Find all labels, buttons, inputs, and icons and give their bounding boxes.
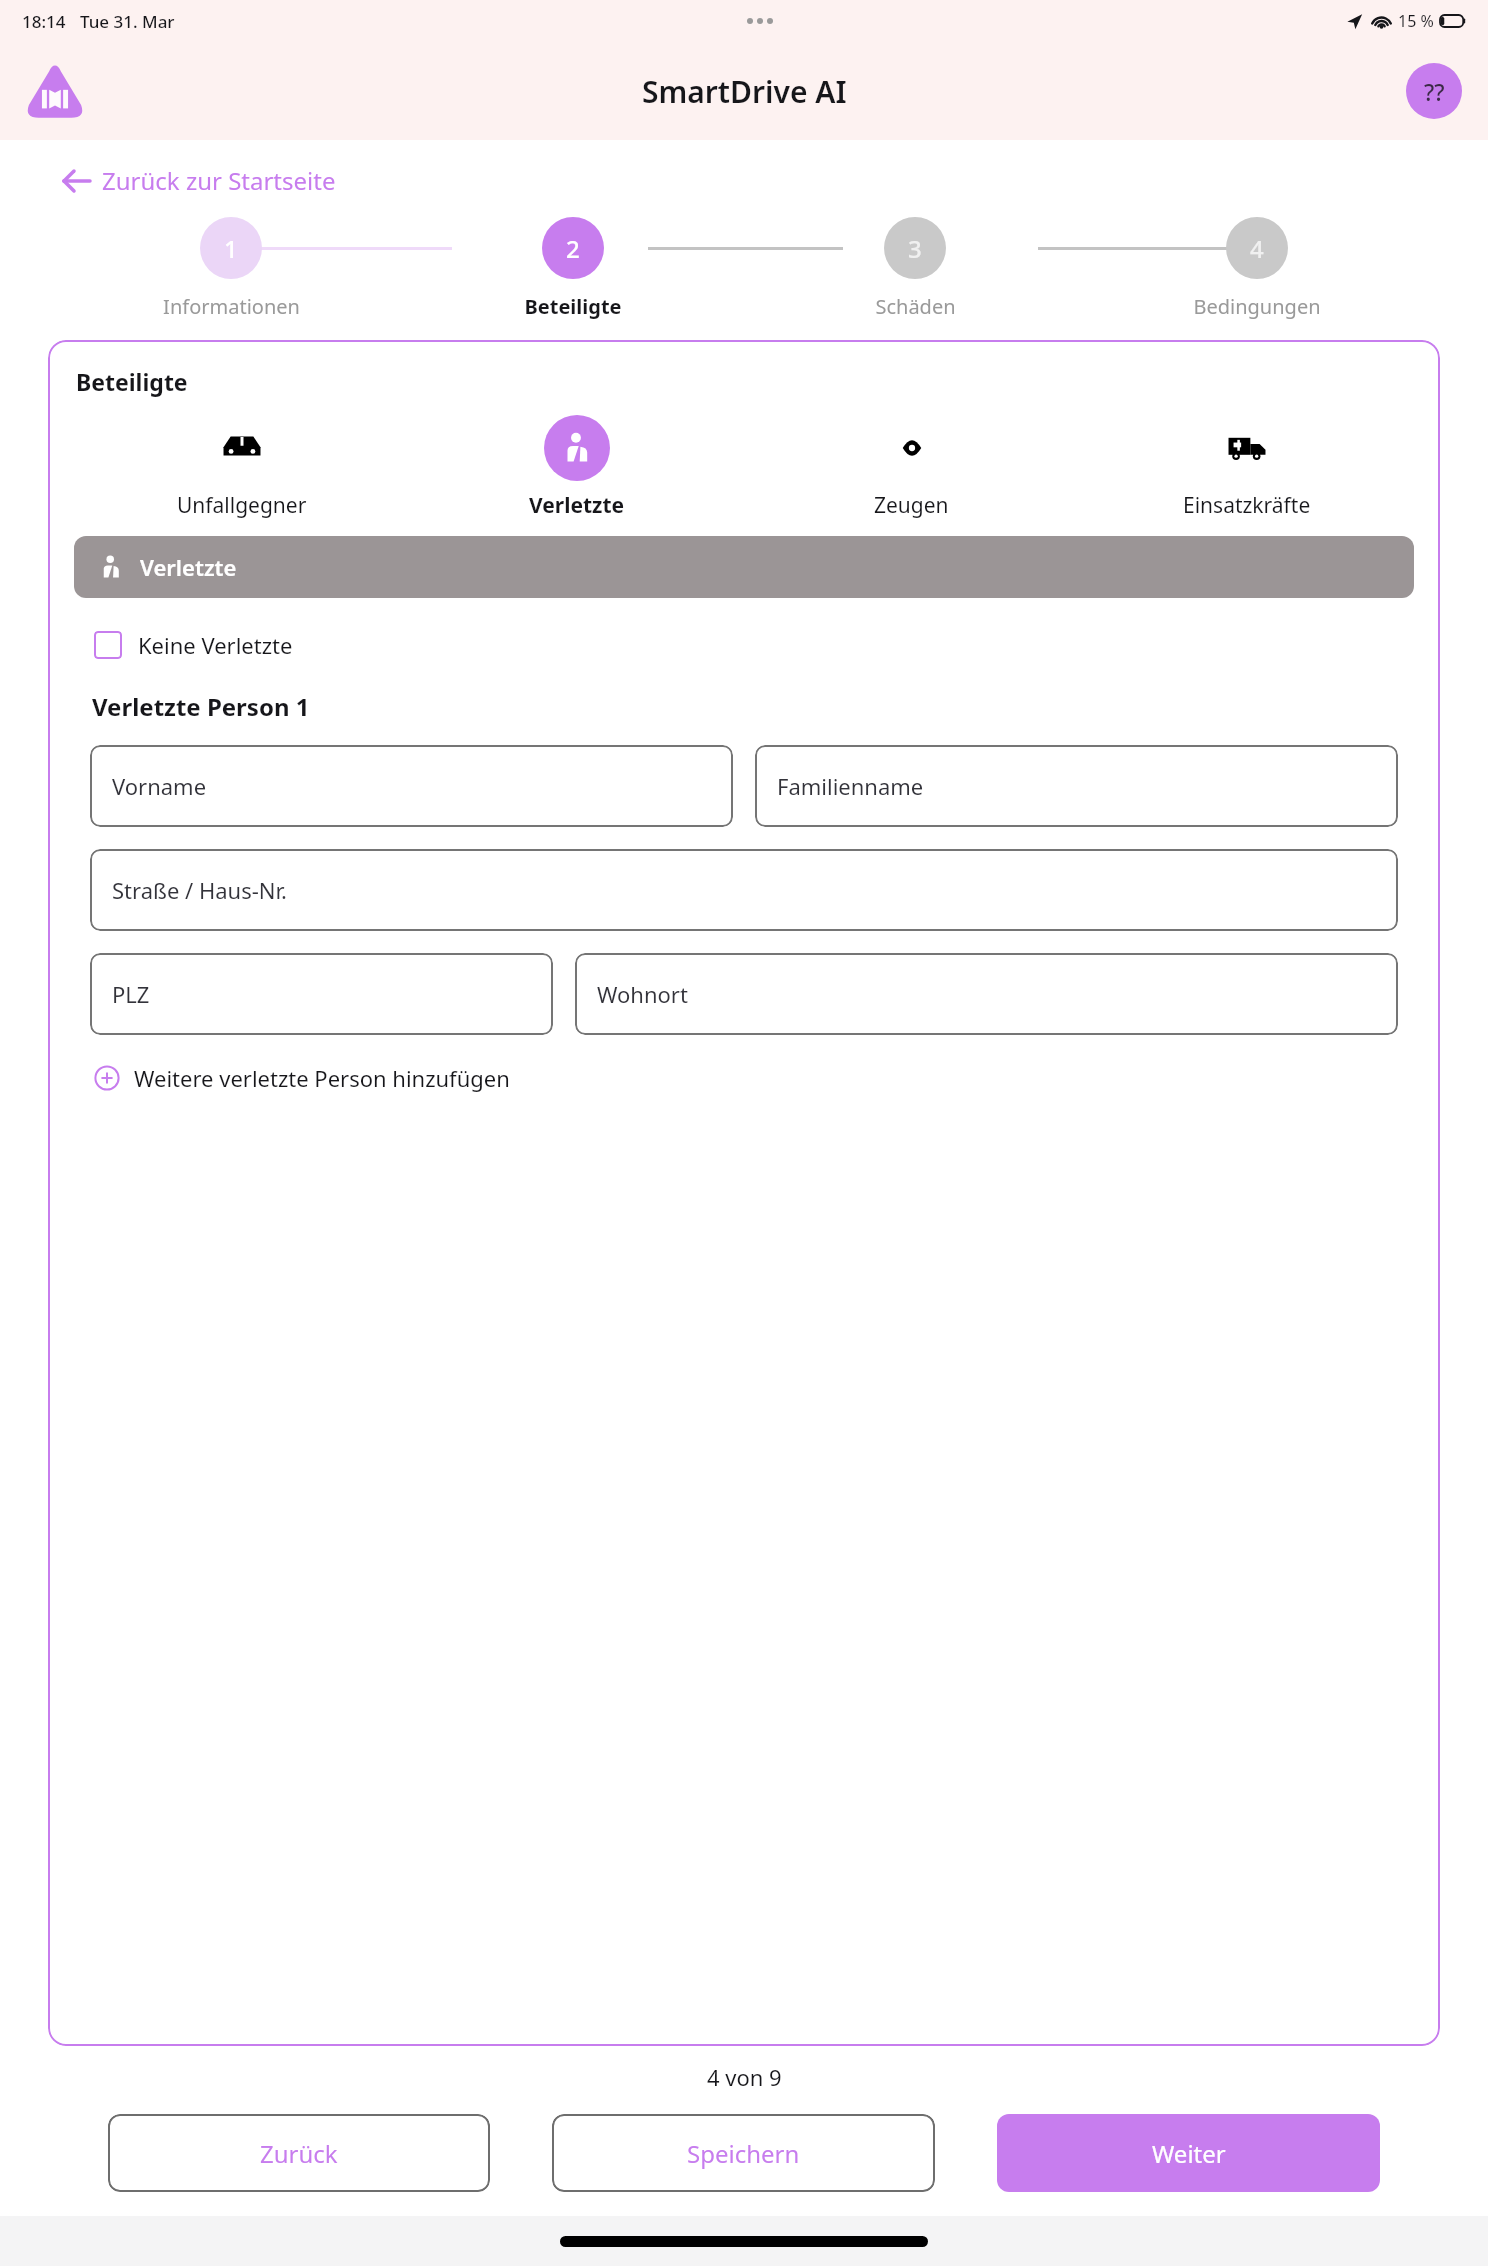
button[interactable]: Zeugen — [744, 415, 1079, 520]
button[interactable]: Zurück zur Startseite — [58, 158, 340, 203]
staticText: Keine Verletzte — [138, 630, 293, 660]
staticText: Weitere verletzte Person hinzufügen — [134, 1063, 510, 1093]
button[interactable]: Speichern — [552, 2114, 935, 2192]
staticText: PLZ — [112, 979, 150, 1009]
staticText: Zurück — [260, 2137, 338, 2170]
button[interactable]: Weitere verletzte Person hinzufügen — [90, 1059, 514, 1097]
staticText: Familienname — [777, 771, 924, 801]
staticText: Vorname — [112, 771, 207, 801]
staticText: 18:14 — [22, 10, 66, 33]
button[interactable]: Weiter — [997, 2114, 1380, 2192]
staticText: Informationen — [163, 293, 300, 320]
staticText: Verletzte Person 1 — [92, 690, 310, 723]
staticText: Zeugen — [874, 491, 949, 520]
staticText: 2 — [566, 232, 580, 265]
button[interactable]: 2 — [402, 217, 744, 320]
staticText: Einsatzkräfte — [1183, 491, 1311, 520]
button[interactable]: Vorname — [90, 745, 733, 827]
staticText: 3 — [908, 232, 922, 265]
staticText: Wohnort — [597, 979, 688, 1009]
staticText: Speichern — [687, 2137, 800, 2170]
staticText: 15 % — [1398, 10, 1434, 32]
button[interactable]: Verletzte — [409, 415, 744, 520]
staticText: Beteiligte — [76, 366, 188, 397]
button[interactable]: 1 — [60, 217, 402, 320]
button[interactable]: SmartDrive Logo — [26, 62, 84, 120]
staticText: Zurück zur Startseite — [102, 164, 336, 197]
button[interactable]: Zurück — [108, 2114, 490, 2192]
staticText: SmartDrive AI — [642, 71, 847, 112]
staticText: 1 — [224, 232, 238, 265]
staticText: Schäden — [875, 293, 956, 320]
button[interactable]: Unfallgegner — [74, 415, 409, 520]
button[interactable]: Straße / Haus-Nr. — [90, 849, 1398, 931]
button[interactable]: 3 — [744, 217, 1086, 320]
staticText: ?? — [1424, 76, 1445, 107]
button[interactable]: Keine Verletzte — [90, 626, 297, 664]
staticText: Bedingungen — [1193, 293, 1321, 320]
button[interactable]: PLZ — [90, 953, 553, 1035]
button[interactable]: Wohnort — [575, 953, 1398, 1035]
button[interactable]: Hilfe — [1406, 63, 1462, 119]
button[interactable]: Einsatzkräfte — [1079, 415, 1414, 520]
staticText: Unfallgegner — [177, 491, 307, 520]
staticText: Tue 31. Mar — [80, 10, 175, 33]
staticText: Verletzte — [529, 491, 625, 520]
staticText: Beteiligte — [524, 293, 622, 320]
button[interactable]: Verletzte — [74, 536, 1414, 598]
staticText: Weiter — [1152, 2137, 1226, 2170]
staticText: 4 — [1250, 232, 1264, 265]
button[interactable]: Familienname — [755, 745, 1398, 827]
button[interactable]: 4 — [1086, 217, 1428, 320]
staticText: Straße / Haus-Nr. — [112, 875, 287, 905]
staticText: Verletzte — [140, 552, 237, 582]
staticText: 4 von 9 — [707, 2062, 782, 2092]
